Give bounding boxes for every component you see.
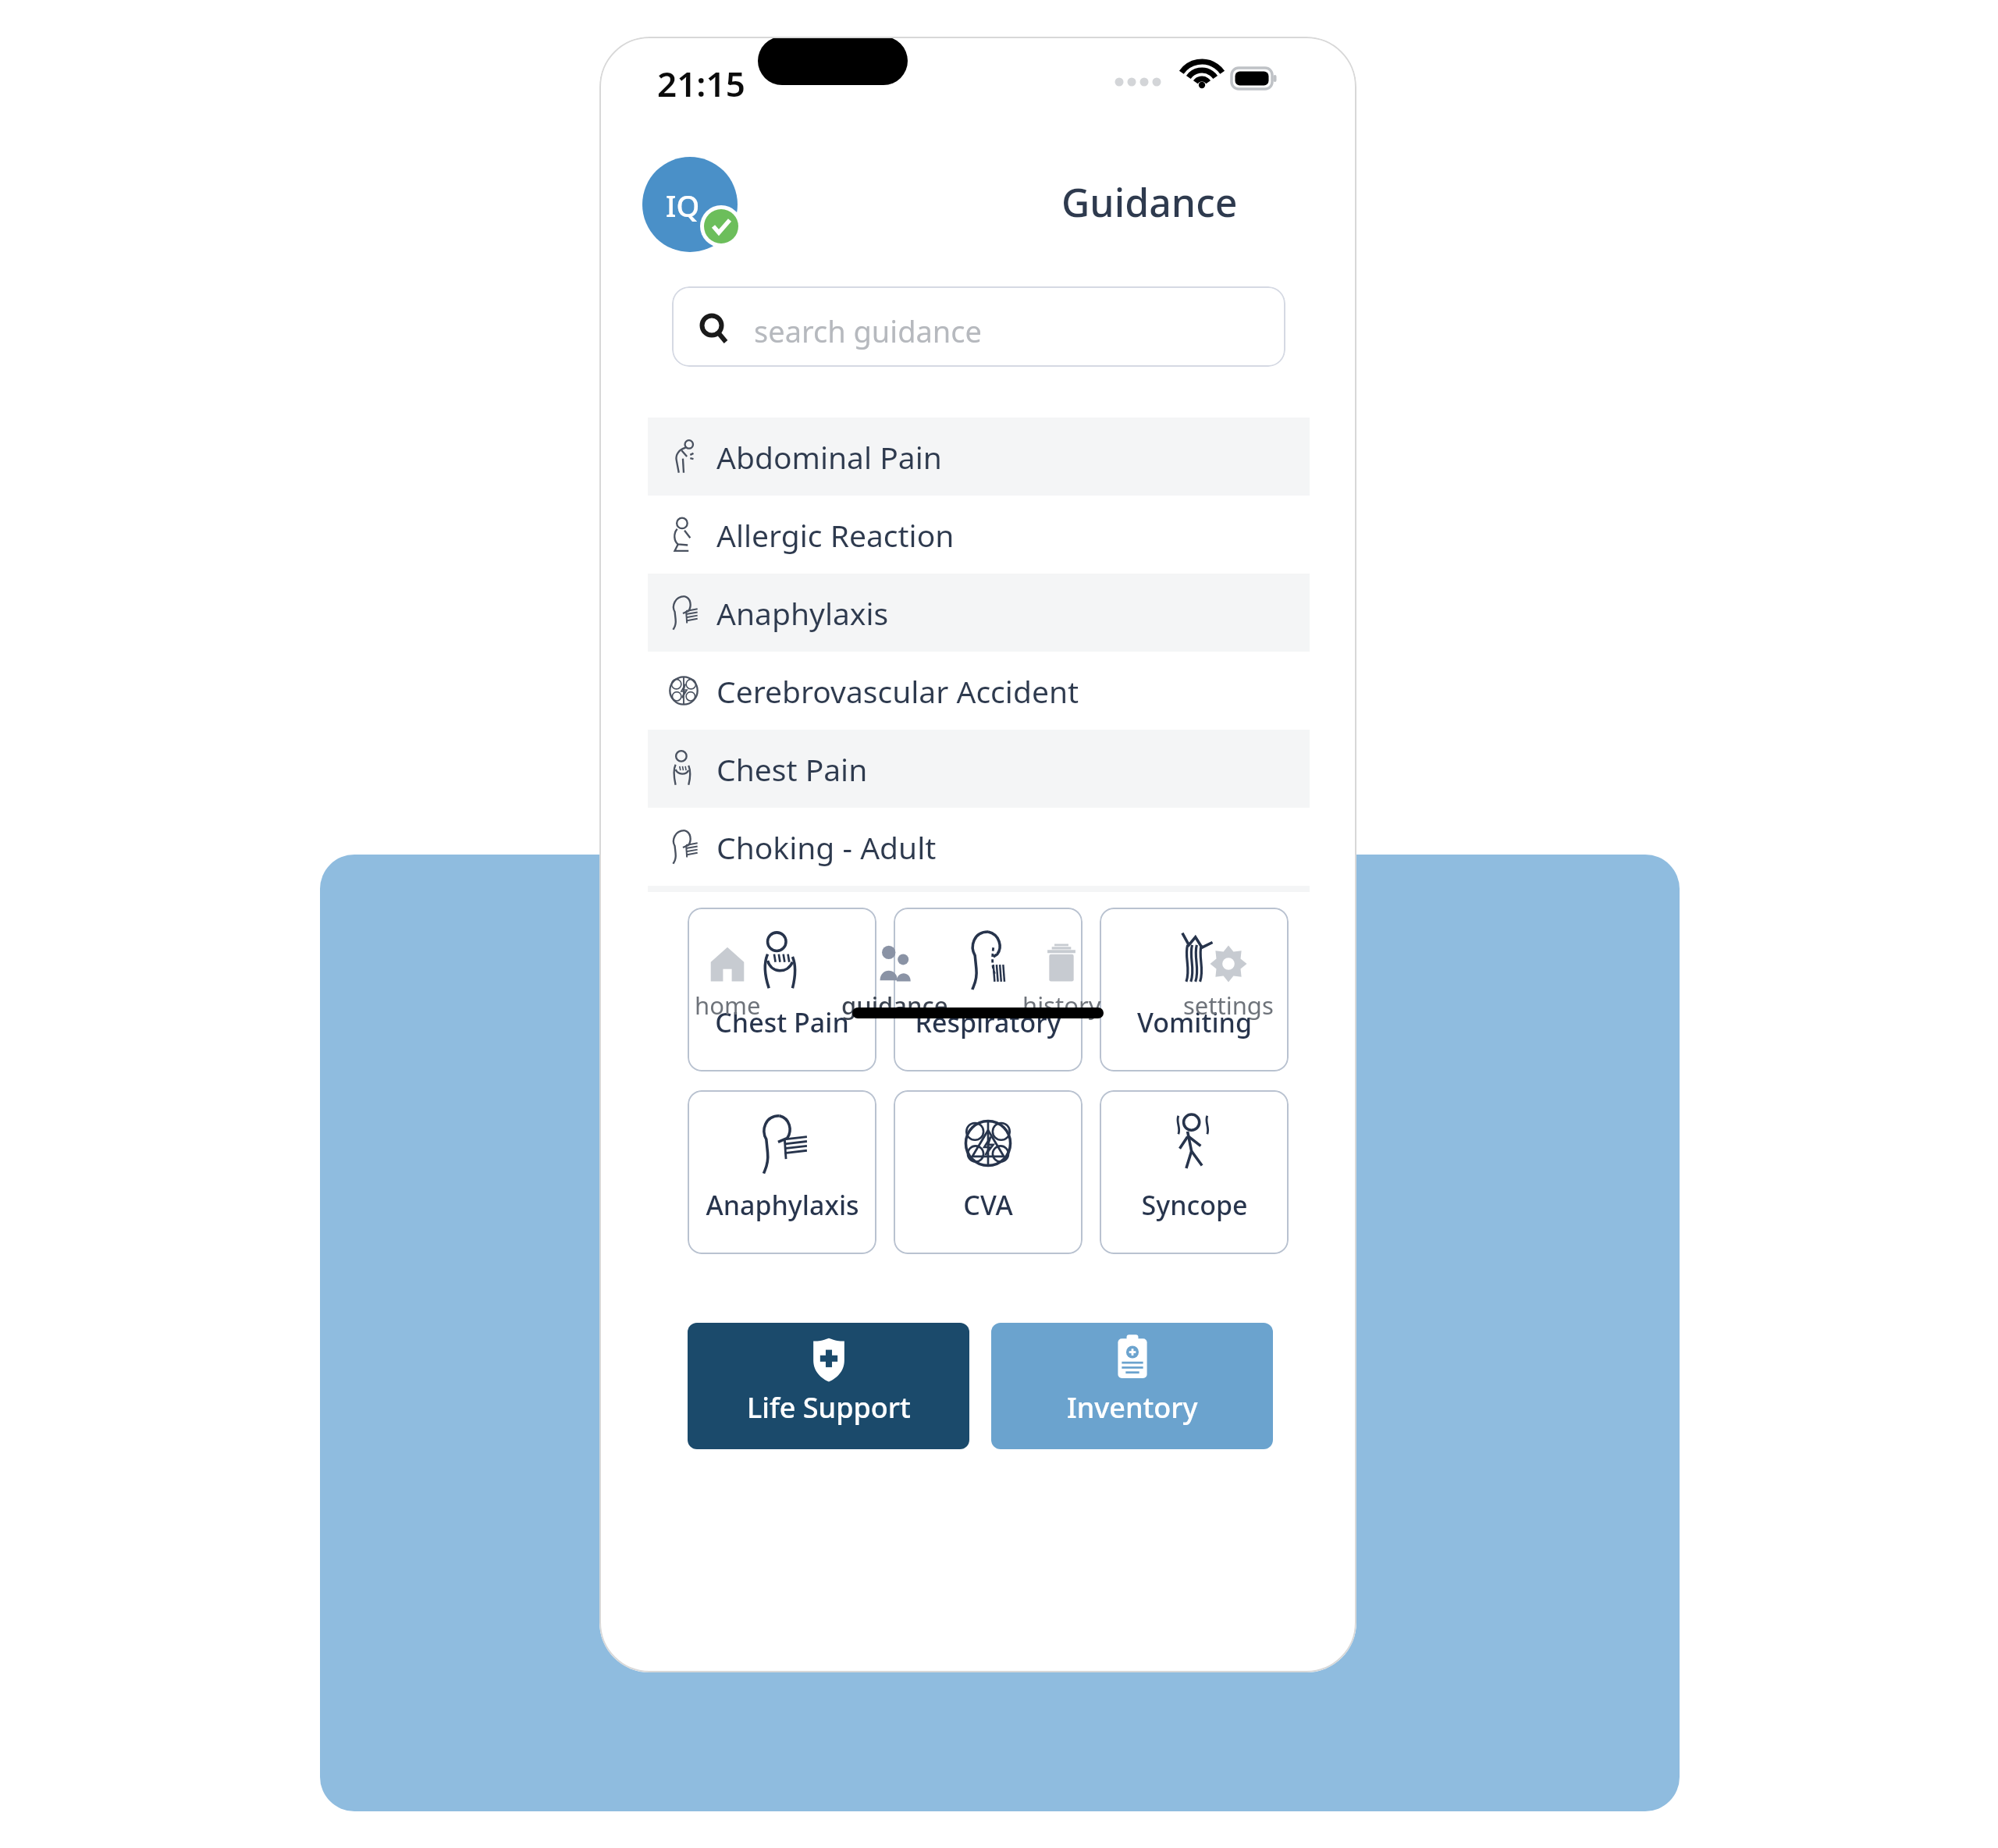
button[interactable]: Inventory [991, 1323, 1273, 1449]
staticText: Anaphylaxis [706, 1187, 859, 1223]
button[interactable]: Profile [642, 160, 717, 235]
staticText: Chest Pain [715, 1004, 849, 1040]
staticText: CVA [963, 1187, 1013, 1223]
staticText: Life Support [747, 1388, 911, 1427]
staticText: search guidance [754, 311, 982, 351]
staticText: settings [1183, 989, 1274, 1022]
button[interactable]: Anaphylaxis [688, 1090, 876, 1254]
staticText: IQ [666, 185, 700, 226]
staticText: Vomiting [1137, 1004, 1252, 1040]
staticText: Abdominal Pain [716, 436, 942, 478]
button[interactable]: search guidance [672, 286, 1285, 367]
staticText: Guidance [1061, 176, 1238, 229]
button[interactable]: Syncope [1100, 1090, 1289, 1254]
button[interactable]: CVA [894, 1090, 1083, 1254]
button[interactable]: Respiratory [894, 908, 1083, 1071]
button[interactable]: Vomiting [1100, 908, 1289, 1071]
staticText: Syncope [1141, 1187, 1248, 1223]
button[interactable]: history [991, 942, 1132, 1028]
staticText: Allergic Reaction [716, 514, 955, 556]
button[interactable]: Chest Pain [648, 730, 1310, 808]
staticText: Chest Pain [716, 748, 868, 790]
staticText: history [1022, 989, 1101, 1022]
button[interactable]: Anaphylaxis [648, 574, 1310, 652]
staticText: Anaphylaxis [716, 592, 889, 634]
button[interactable]: Cerebrovascular Accident [648, 652, 1310, 730]
button[interactable]: settings [1158, 942, 1299, 1028]
staticText: Choking - Adult [716, 826, 937, 868]
button[interactable]: Allergic Reaction [648, 496, 1310, 574]
button[interactable]: Life Support [688, 1323, 969, 1449]
staticText: Respiratory [915, 1004, 1061, 1040]
button[interactable]: Choking - Adult [648, 808, 1310, 886]
staticText: Cerebrovascular Accident [716, 670, 1079, 712]
staticText: Inventory [1067, 1388, 1198, 1427]
button[interactable]: guidance [824, 942, 965, 1028]
staticText: guidance [841, 989, 948, 1022]
button[interactable]: Chest Pain [688, 908, 876, 1071]
staticText: home [695, 989, 761, 1022]
button[interactable]: home [657, 942, 798, 1028]
staticText: 21:15 [657, 60, 745, 107]
button[interactable]: Abdominal Pain [648, 418, 1310, 496]
